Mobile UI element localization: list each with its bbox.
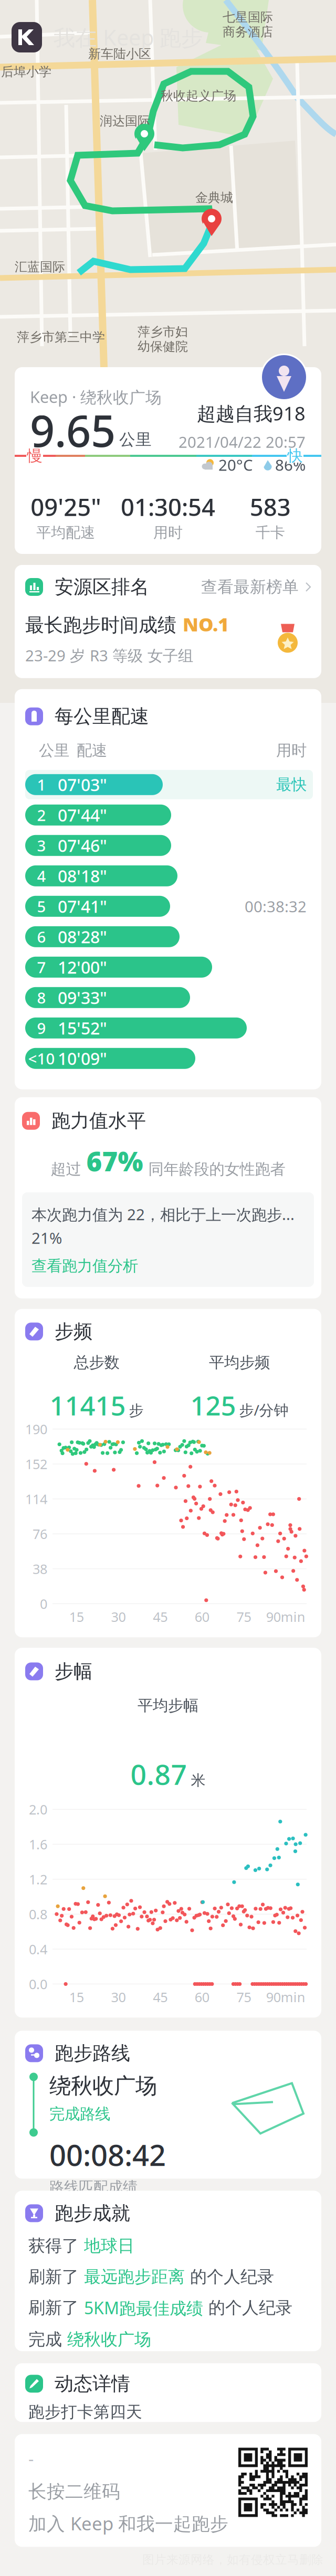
staticText: 583 xyxy=(250,491,291,523)
staticText: 5 xyxy=(37,896,46,917)
staticText: 6 xyxy=(37,926,46,947)
staticText: 67% xyxy=(86,1143,143,1179)
staticText: 86% xyxy=(275,455,306,475)
staticText: 跑步成就 xyxy=(55,2202,130,2225)
staticText: <10 xyxy=(28,1048,55,1069)
staticText: 同年龄段的女性跑者 xyxy=(148,1160,285,1179)
staticText: 15 xyxy=(69,1608,84,1626)
staticText: 图片来源网络，如有侵权立马删除 xyxy=(142,2552,323,2567)
staticText: 快 xyxy=(287,446,303,465)
staticText: 45 xyxy=(153,1988,168,2006)
staticText: 超越自我918 xyxy=(197,401,306,426)
staticText: 0.87 xyxy=(130,1755,187,1793)
staticText: 75 xyxy=(237,1608,251,1626)
staticText: 60 xyxy=(195,1988,209,2006)
staticText: 90min xyxy=(266,1988,305,2006)
staticText: 步频 xyxy=(55,1320,92,1343)
staticText: 08'28" xyxy=(58,926,107,948)
staticText: 刷新了 xyxy=(28,2297,84,2318)
staticText: 38 xyxy=(33,1560,47,1578)
staticText: 07'03" xyxy=(58,773,107,796)
staticText: 30 xyxy=(111,1608,126,1626)
staticText: 90min xyxy=(266,1608,305,1626)
staticText: 7 xyxy=(37,957,46,977)
staticText: 商务酒店 xyxy=(223,24,273,40)
staticText: 润达国际 xyxy=(100,113,150,129)
staticText: 获得了 xyxy=(28,2236,84,2256)
staticText: 00:08:42 xyxy=(49,2135,166,2174)
staticText: 09'33" xyxy=(58,986,107,1009)
staticText: 安源区排名 xyxy=(55,575,149,599)
staticText: 刷新了 xyxy=(28,2266,84,2287)
staticText: 9 xyxy=(37,1018,46,1038)
staticText: 45 xyxy=(153,1608,168,1626)
staticText: 我在 Keep 跑步 xyxy=(54,23,203,52)
staticText: 幼保健院 xyxy=(138,339,188,354)
staticText: 07'44" xyxy=(58,804,107,826)
staticText: 公里 xyxy=(39,741,69,760)
staticText: 平均步频 xyxy=(209,1353,270,1372)
staticText: 1.6 xyxy=(29,1835,47,1853)
staticText: 0.0 xyxy=(29,1975,47,1993)
staticText: 金典城 xyxy=(195,190,233,205)
staticText: 查看跑力值分析 xyxy=(31,1256,138,1275)
staticText: 3 xyxy=(37,835,46,856)
staticText: 07'41" xyxy=(58,895,107,917)
staticText: 平均步幅 xyxy=(138,1696,198,1715)
staticText: 1.2 xyxy=(29,1870,47,1888)
staticText: 地球日 xyxy=(84,2236,134,2256)
staticText: 0.4 xyxy=(29,1940,47,1958)
staticText: 30 xyxy=(111,1988,126,2006)
staticText: 10'09" xyxy=(58,1047,107,1070)
staticText: Keep · 绕秋收广场 xyxy=(30,386,162,408)
staticText: 路线匹配成绩 xyxy=(49,2178,138,2196)
staticText: 用时 xyxy=(153,524,183,542)
staticText: 07'46" xyxy=(58,834,107,857)
staticText: 01:30:54 xyxy=(121,491,215,523)
staticText: 08'18" xyxy=(58,865,107,887)
staticText: 15 xyxy=(69,1988,84,2006)
staticText: 12'00" xyxy=(58,956,107,978)
staticText: 完成 xyxy=(28,2329,67,2350)
staticText: 0.8 xyxy=(29,1905,47,1923)
staticText: 新车陆小区 xyxy=(88,46,151,62)
staticText: 76 xyxy=(33,1525,47,1543)
staticText: 跑力值水平 xyxy=(51,1109,146,1132)
staticText: 萍乡市妇 xyxy=(138,324,188,340)
staticText: 萍乡市第三中学 xyxy=(17,329,105,345)
staticText: 114 xyxy=(25,1490,47,1508)
staticText: 跑步路线 xyxy=(55,2042,130,2065)
staticText: 绕秋收广场 xyxy=(49,2073,157,2099)
staticText: 75 xyxy=(237,1988,251,2006)
staticText: 15'52" xyxy=(58,1017,107,1039)
staticText: 152 xyxy=(25,1455,47,1473)
staticText: 00:38:32 xyxy=(245,896,307,917)
staticText: 20°C xyxy=(218,455,253,475)
staticText: 0 xyxy=(40,1595,47,1613)
staticText: 步幅 xyxy=(55,1660,92,1683)
staticText: 超过 xyxy=(51,1160,81,1179)
staticText: 1 xyxy=(37,774,46,795)
staticText: 公里 xyxy=(119,430,152,449)
staticText: 09'25" xyxy=(31,491,101,523)
staticText: 总步数 xyxy=(74,1353,119,1372)
staticText: 190 xyxy=(25,1420,47,1438)
staticText: 60 xyxy=(195,1608,209,1626)
staticText: 23-29 岁 R3 等级 女子组 xyxy=(25,645,193,666)
button[interactable]: 本次跑力值为 22，相比于上一次跑步，水平提高了 xyxy=(22,1192,314,1287)
staticText: 查看最新榜单 xyxy=(201,577,299,597)
staticText: 加入 Keep 和我一起跑步 xyxy=(28,2511,228,2535)
staticText: 慢 xyxy=(27,446,42,465)
staticText: 七星国际 xyxy=(223,9,273,25)
staticText: 最长跑步时间成绩 xyxy=(25,613,176,637)
staticText: 用时 xyxy=(276,741,307,760)
staticText: 的个人纪录 xyxy=(185,2266,274,2287)
staticText: 平均配速 xyxy=(36,524,95,542)
staticText: 最快 xyxy=(276,775,307,794)
staticText: 最远跑步距离 xyxy=(84,2266,185,2287)
staticText: 跑步打卡第四天 xyxy=(28,2402,142,2422)
staticText: 9.65 xyxy=(30,401,115,459)
staticText: 配速 xyxy=(77,741,107,760)
staticText: 汇蓝国际 xyxy=(15,259,65,275)
button[interactable]: 安源区排名 xyxy=(0,565,321,678)
